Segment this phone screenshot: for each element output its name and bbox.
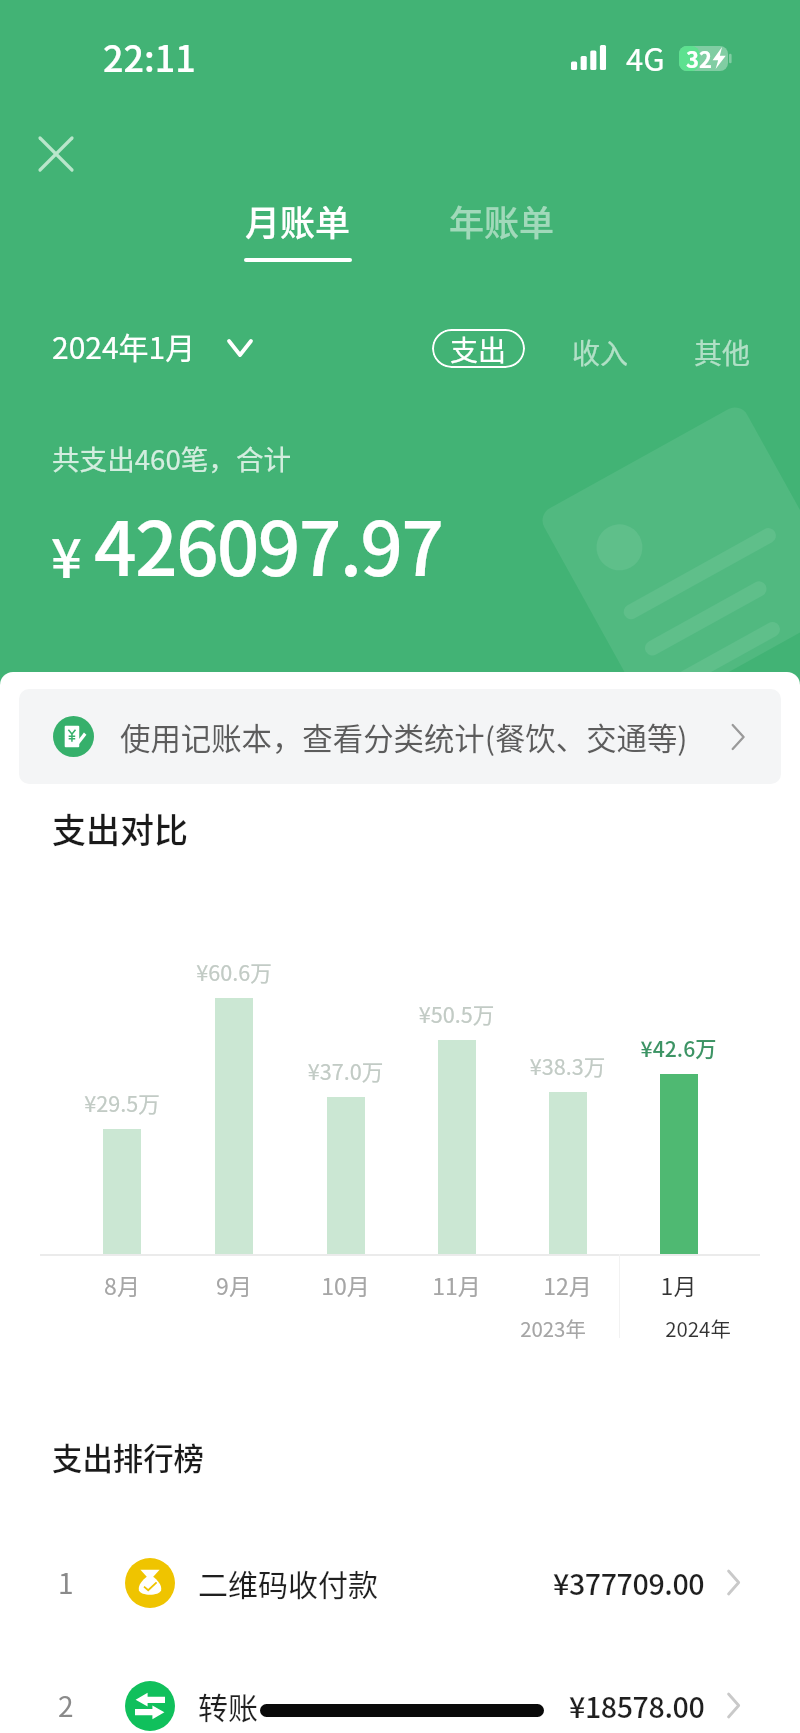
staticText: 共支出460笔，合计	[52, 438, 292, 478]
staticText: 支出对比	[52, 804, 188, 853]
staticText: 月账单	[245, 195, 351, 246]
staticText: 32	[686, 42, 712, 74]
staticText: 2023年	[487, 1313, 619, 1343]
staticText: 支出	[450, 329, 507, 368]
button[interactable]: 支出	[432, 329, 525, 368]
staticText: 8月	[66, 1268, 178, 1301]
button[interactable]: 1	[0, 1521, 800, 1644]
button[interactable]: Close	[12, 110, 100, 198]
staticText: ¥42.6万	[623, 1032, 734, 1063]
staticText: ¥	[51, 515, 82, 593]
staticText: 22:11	[103, 30, 196, 82]
staticText: 2	[58, 1685, 74, 1726]
staticText: ¥60.6万	[178, 956, 290, 987]
staticText: 11月	[401, 1268, 512, 1301]
button[interactable]: 其他	[682, 328, 763, 377]
staticText: 使用记账本，查看分类统计(餐饮、交通等)	[120, 715, 688, 759]
staticText: 1	[58, 1562, 74, 1603]
staticText: 10月	[290, 1268, 401, 1301]
staticText: 1月	[623, 1268, 734, 1301]
staticText: ¥377709.00	[553, 1562, 705, 1603]
staticText: 其他	[694, 332, 751, 373]
staticText: 12月	[512, 1268, 623, 1301]
button[interactable]: 2024年1月	[40, 312, 263, 379]
staticText: ¥38.3万	[512, 1050, 623, 1081]
button[interactable]: 使用记账本，查看分类统计(餐饮、交通等)	[19, 689, 781, 784]
button[interactable]: 月账单	[224, 187, 372, 270]
staticText: ¥29.5万	[66, 1087, 178, 1118]
staticText: ¥37.0万	[290, 1055, 401, 1086]
staticText: 9月	[178, 1268, 290, 1301]
staticText: 2024年	[632, 1313, 764, 1343]
button[interactable]: 收入	[560, 328, 641, 377]
staticText: 转账	[198, 1684, 258, 1727]
button[interactable]: 2	[0, 1644, 800, 1733]
staticText: 收入	[572, 332, 629, 373]
staticText: 支出排行榜	[52, 1435, 204, 1479]
staticText: 4G	[626, 35, 665, 80]
staticText: 426097.97	[94, 489, 443, 598]
button[interactable]: 年账单	[429, 187, 575, 254]
staticText: 年账单	[449, 195, 555, 246]
staticText: ¥50.5万	[401, 998, 512, 1029]
staticText: 二维码收付款	[198, 1561, 378, 1604]
staticText: ¥18578.00	[569, 1685, 705, 1726]
staticText: 2024年1月	[52, 324, 196, 367]
